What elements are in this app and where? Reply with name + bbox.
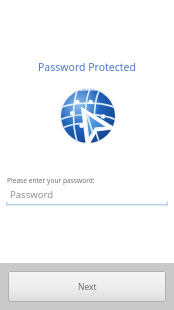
button[interactable]: Password [6,188,168,206]
other: App logo [59,87,117,145]
staticText: Next [78,281,97,293]
staticText: Password [10,188,53,201]
staticText: Password Protected [0,60,174,74]
button[interactable]: Next [8,271,166,302]
staticText: Please enter your password: [7,176,95,185]
